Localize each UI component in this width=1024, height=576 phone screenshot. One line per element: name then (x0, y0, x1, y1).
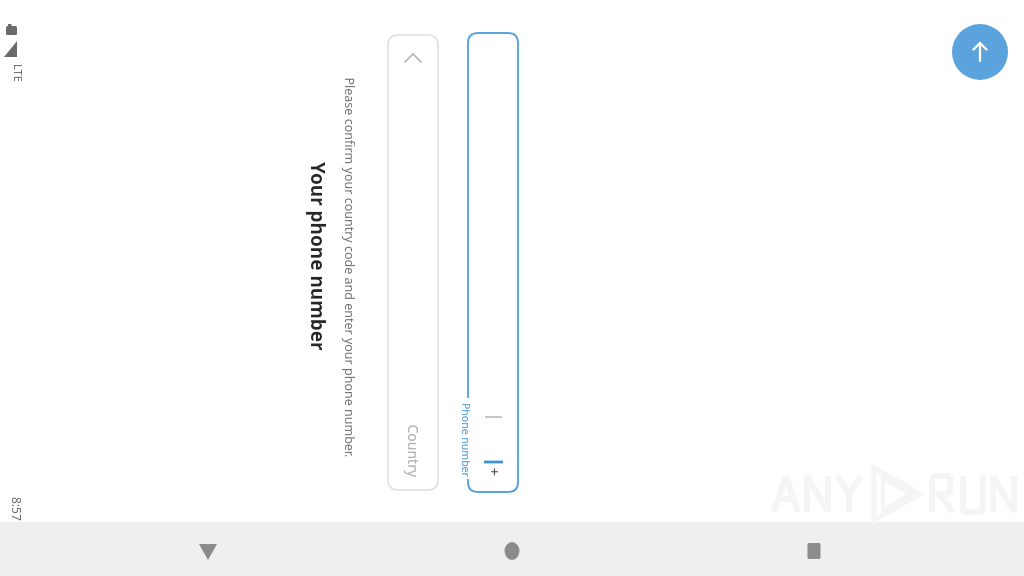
button[interactable]: Home (488, 527, 536, 575)
button[interactable]: Back (184, 527, 232, 575)
button[interactable]: Phone number (468, 33, 518, 492)
button[interactable]: Country (388, 35, 438, 490)
button[interactable]: Recent apps (790, 527, 838, 575)
button[interactable]: Continue (952, 24, 1008, 80)
